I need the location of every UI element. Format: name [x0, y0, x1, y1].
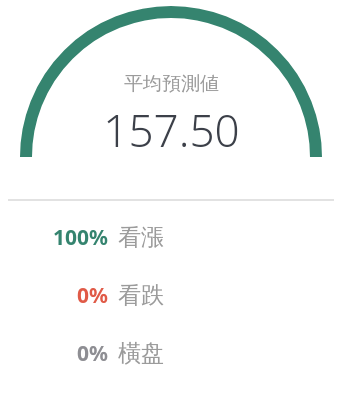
button[interactable]: 0%: [0, 338, 342, 368]
staticText: 看漲: [118, 223, 164, 252]
staticText: 看跌: [118, 281, 164, 310]
staticText: 0%: [77, 339, 108, 368]
staticText: 157.50: [103, 100, 240, 160]
staticText: 100%: [53, 223, 108, 252]
button[interactable]: 100%: [0, 222, 342, 252]
staticText: 平均預測値: [124, 72, 219, 96]
staticText: 0%: [77, 281, 108, 310]
button[interactable]: 0%: [0, 280, 342, 310]
staticText: 橫盘: [118, 339, 164, 368]
